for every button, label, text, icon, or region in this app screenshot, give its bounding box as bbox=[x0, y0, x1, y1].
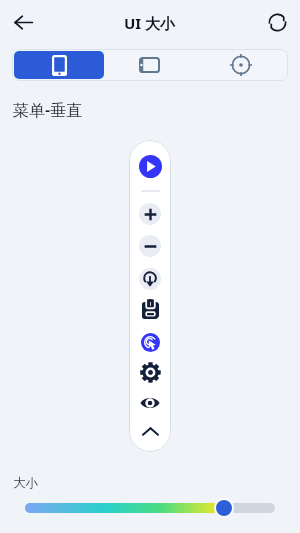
staticText: 大小 bbox=[13, 475, 38, 491]
button[interactable]: Collapse bbox=[139, 420, 161, 442]
button[interactable]: Back bbox=[6, 5, 40, 39]
button[interactable]: Zoom out bbox=[139, 235, 161, 257]
button[interactable]: Refresh bbox=[259, 4, 295, 40]
button[interactable]: Phone size bbox=[14, 51, 104, 79]
button[interactable]: Preview bbox=[139, 392, 161, 414]
button[interactable]: Download bbox=[139, 268, 161, 290]
staticText: UI 大小 bbox=[124, 13, 176, 33]
button[interactable]: Custom size bbox=[195, 51, 286, 79]
button[interactable]: Touch bbox=[141, 333, 160, 352]
staticText: 菜单-垂直 bbox=[13, 99, 83, 121]
button[interactable]: Zoom in bbox=[139, 203, 161, 225]
button[interactable]: Size slider handle bbox=[214, 498, 234, 518]
button[interactable]: Save bbox=[139, 299, 161, 321]
button[interactable]: Settings bbox=[139, 361, 161, 383]
button[interactable] bbox=[25, 503, 275, 513]
button[interactable]: Tablet size bbox=[104, 51, 195, 79]
button[interactable]: Play bbox=[139, 155, 162, 178]
